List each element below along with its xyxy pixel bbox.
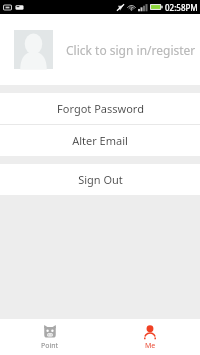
staticText: Me xyxy=(145,341,156,351)
staticText: Forgot Password xyxy=(57,101,144,116)
button[interactable]: Point xyxy=(0,319,100,355)
button[interactable]: Click to sign in/register xyxy=(0,14,200,85)
button[interactable]: Forgot Password xyxy=(0,93,200,124)
button[interactable]: Me xyxy=(100,319,200,355)
button[interactable]: Sign Out xyxy=(0,164,200,195)
staticText: Point xyxy=(41,341,59,351)
button[interactable]: Alter Email xyxy=(0,125,200,156)
staticText: 02:58PM xyxy=(165,2,198,13)
staticText: Sign Out xyxy=(78,172,123,187)
staticText: Alter Email xyxy=(72,133,128,148)
staticText: Click to sign in/register xyxy=(66,42,196,58)
